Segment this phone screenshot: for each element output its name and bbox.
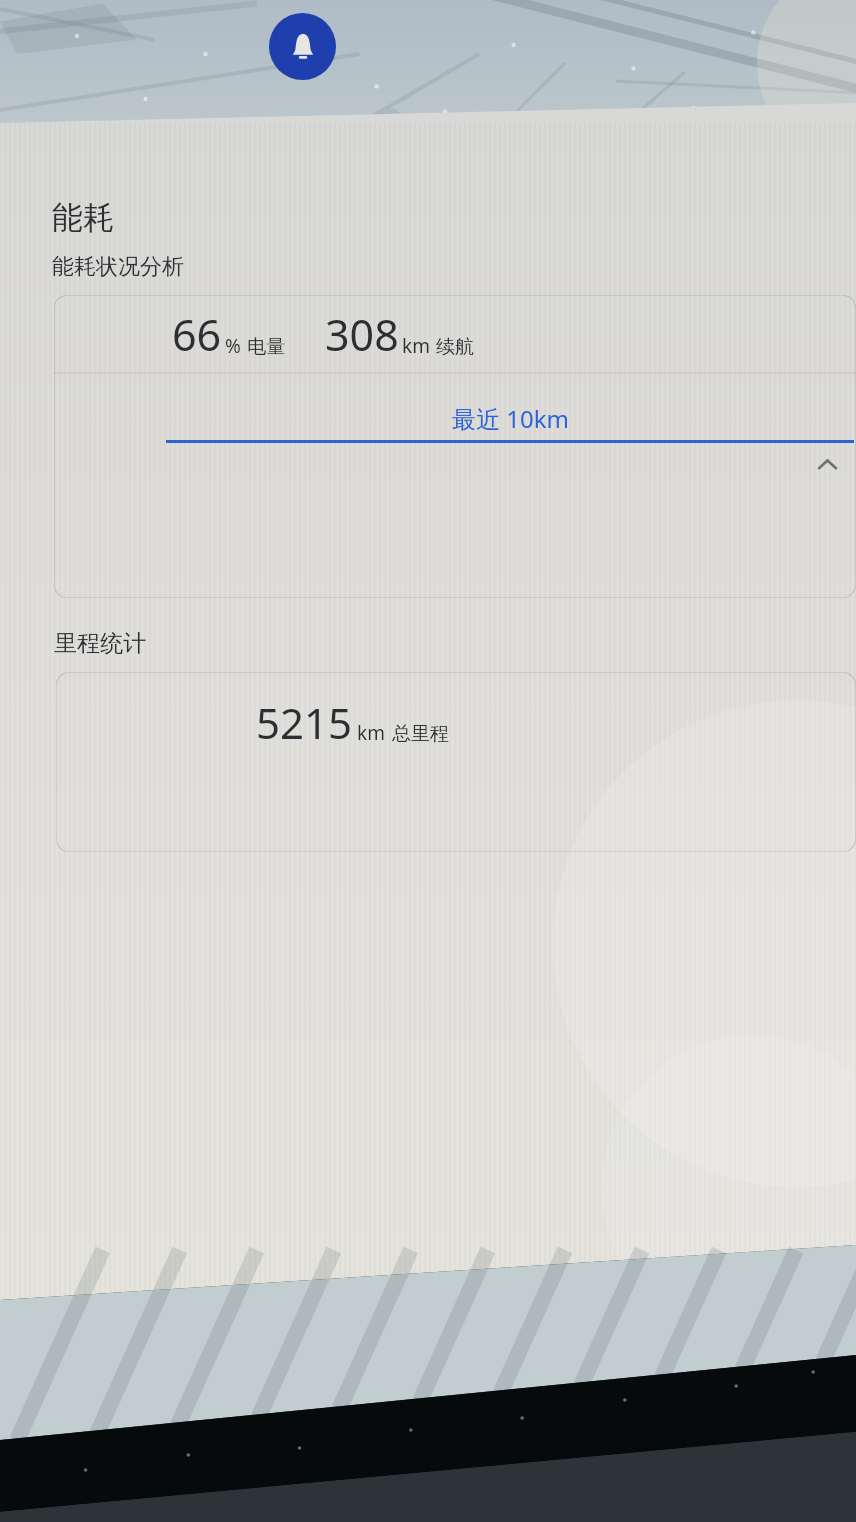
staticText: km xyxy=(402,333,430,359)
button[interactable]: 66 xyxy=(54,295,856,598)
staticText: 总里程 xyxy=(392,722,449,746)
staticText: 能耗状况分析 xyxy=(52,253,184,281)
staticText: km xyxy=(357,720,385,746)
button[interactable]: Collapse xyxy=(810,447,844,481)
button[interactable]: Notifications xyxy=(269,13,336,80)
button[interactable]: 最近 10km xyxy=(164,402,856,443)
staticText: 电量 xyxy=(247,335,285,359)
staticText: 能耗 xyxy=(52,198,114,237)
staticText: 308 xyxy=(325,305,399,364)
button[interactable]: 5215 xyxy=(56,672,856,852)
staticText: 5215 xyxy=(256,694,353,751)
staticText: 最近 10km xyxy=(452,402,569,435)
staticText: 续航 xyxy=(436,335,474,359)
staticText: % xyxy=(225,333,241,359)
staticText: 66 xyxy=(172,305,222,364)
staticText: 里程统计 xyxy=(54,629,146,658)
